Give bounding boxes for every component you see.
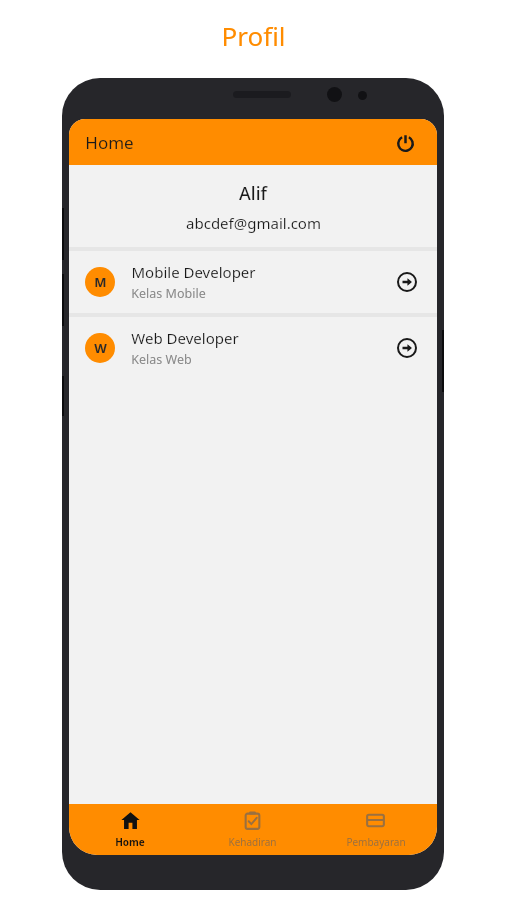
button[interactable]: Logout [389, 126, 421, 158]
staticText: Home [85, 131, 134, 154]
staticText: Kehadiran [228, 835, 277, 849]
staticText: Pembayaran [346, 835, 406, 849]
button[interactable]: Open Web Developer [393, 334, 421, 362]
button[interactable]: Open Mobile Developer [393, 268, 421, 296]
button[interactable]: Pembayaran [314, 804, 437, 855]
button[interactable]: W [69, 317, 437, 379]
staticText: Kelas Web [131, 351, 192, 368]
staticText: Home [115, 835, 145, 849]
button[interactable]: Home [69, 804, 191, 855]
staticText: M [94, 273, 107, 291]
staticText: Kelas Mobile [131, 285, 206, 302]
staticText: W [94, 339, 107, 357]
button[interactable]: M [69, 251, 437, 313]
button[interactable]: Kehadiran [191, 804, 314, 855]
staticText: Mobile Developer [131, 262, 256, 282]
staticText: abcdef@gmail.com [186, 213, 321, 233]
staticText: Web Developer [131, 328, 239, 348]
staticText: Profil [221, 18, 286, 53]
staticText: Alif [239, 181, 267, 206]
